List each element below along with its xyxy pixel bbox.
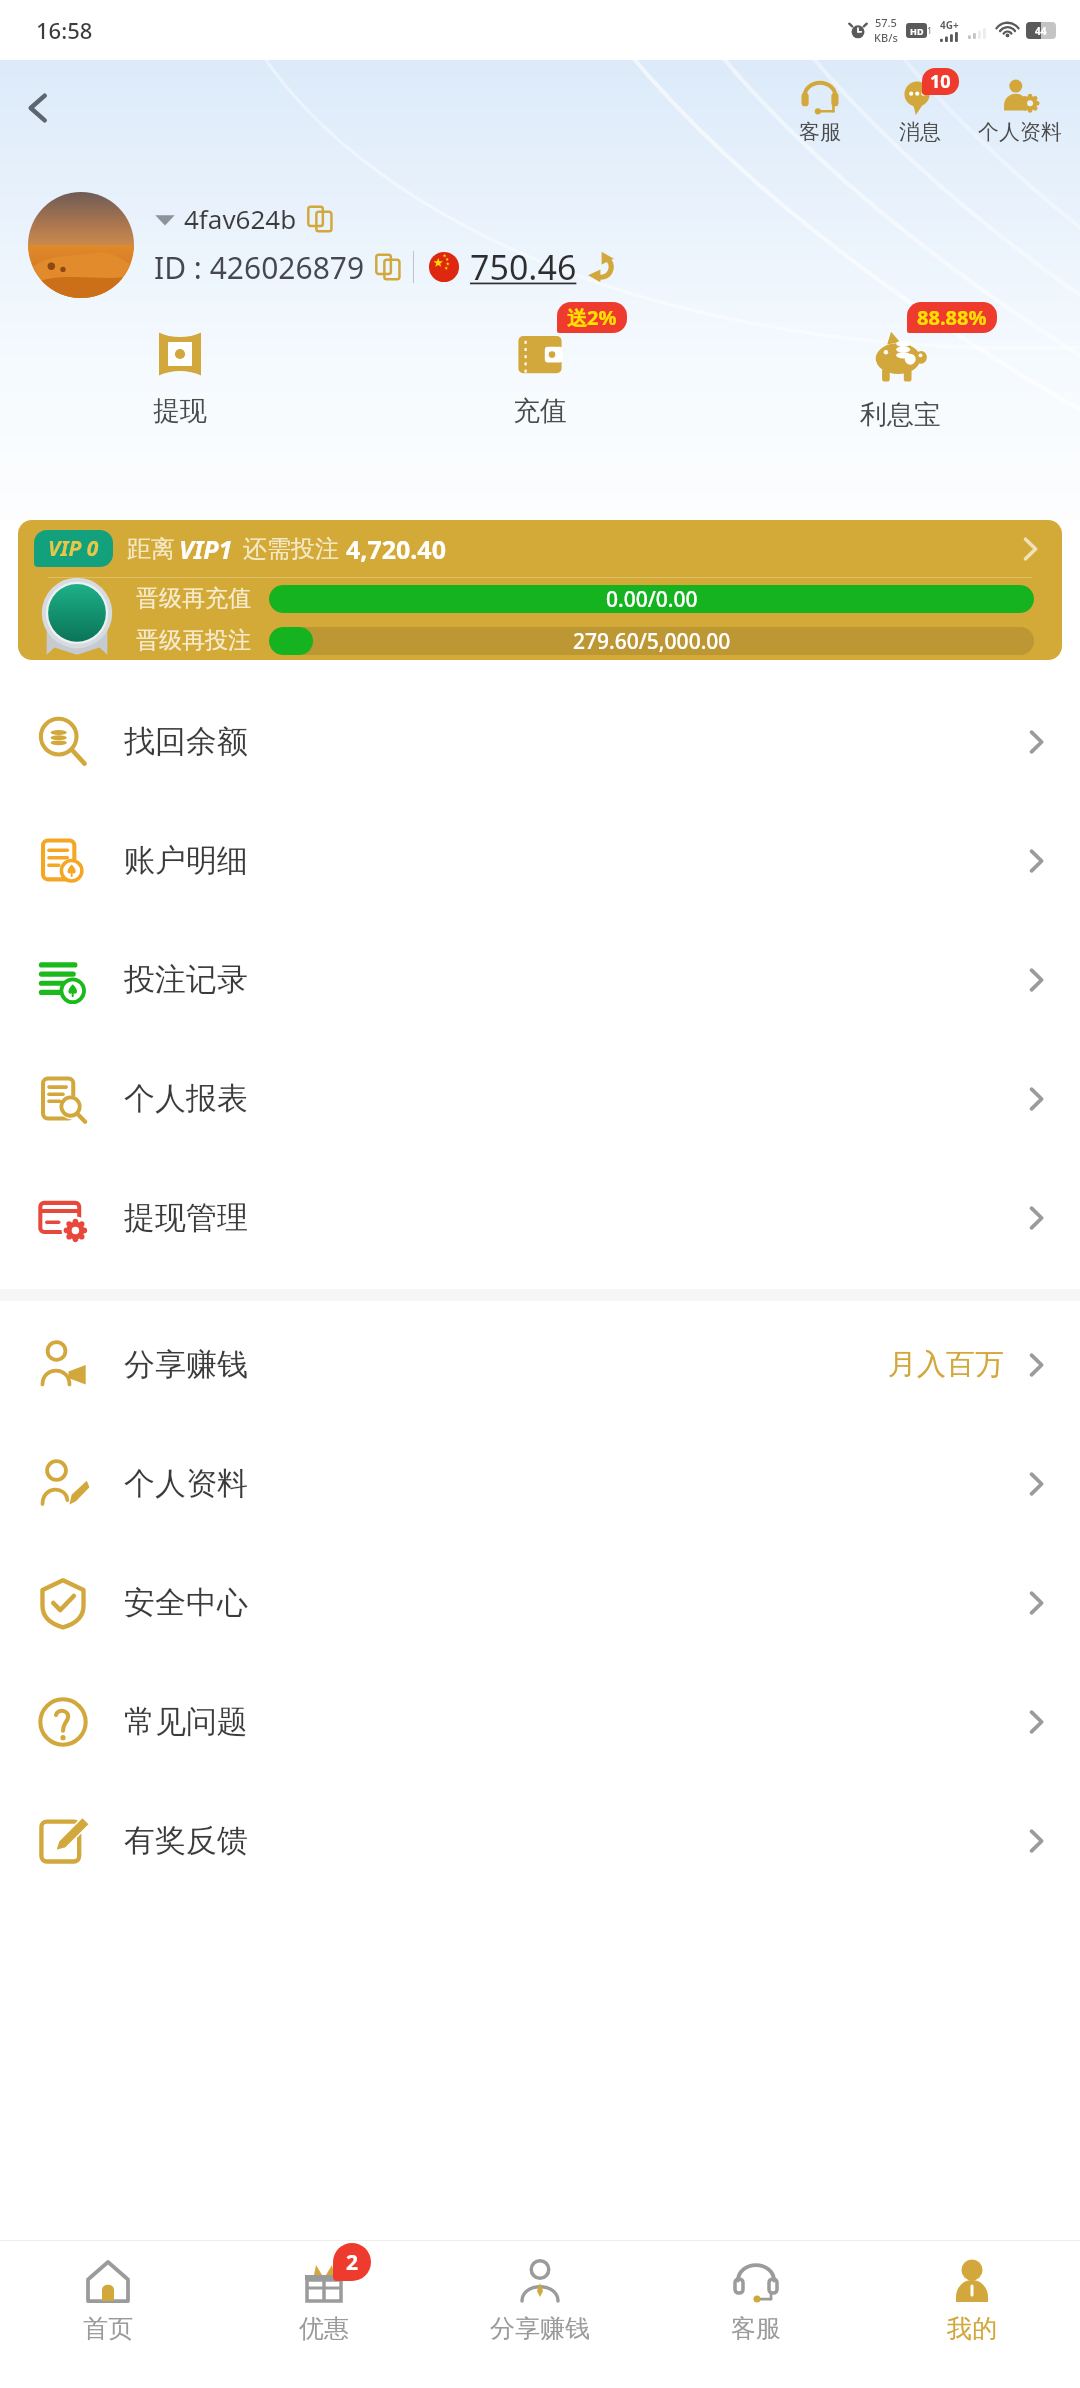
button[interactable]: 88.88% <box>720 322 1080 434</box>
staticText: 个人资料 <box>124 1464 248 1503</box>
button[interactable]: 个人报表 <box>0 1039 1080 1158</box>
staticText: 月入百万 <box>888 1346 1004 1383</box>
staticText: 4fav624b <box>184 201 297 236</box>
staticText: 44 <box>1035 24 1047 38</box>
button[interactable]: 750.46 <box>470 244 577 290</box>
button[interactable]: Messages <box>870 76 970 145</box>
staticText: 优惠 <box>299 2313 349 2344</box>
button[interactable]: Back <box>10 80 66 136</box>
staticText: ID : 426026879 <box>154 247 365 288</box>
staticText: 4,720.40 <box>346 532 446 566</box>
button[interactable]: 投注记录 <box>0 920 1080 1039</box>
button[interactable]: 我的 <box>864 2257 1080 2344</box>
staticText: 充值 <box>513 394 567 428</box>
staticText: 找回余额 <box>124 722 248 761</box>
staticText: 晋级再投注 <box>136 626 251 655</box>
staticText: HD <box>910 25 924 37</box>
button[interactable]: 有奖反馈 <box>0 1781 1080 1900</box>
staticText: 57.5 <box>875 15 897 30</box>
staticText: VIP 0 <box>48 534 99 563</box>
button[interactable]: 安全中心 <box>0 1543 1080 1662</box>
button[interactable]: 分享赚钱 <box>0 1305 1080 1424</box>
staticText: 1 <box>927 24 933 36</box>
staticText: 账户明细 <box>124 841 248 880</box>
staticText: 10 <box>930 69 951 94</box>
button[interactable]: 个人资料 <box>0 1424 1080 1543</box>
button[interactable]: 账户明细 <box>0 801 1080 920</box>
staticText: 消息 <box>899 119 941 145</box>
staticText: 279.60/5,000.00 <box>573 627 731 655</box>
button[interactable]: 2 <box>216 2257 432 2344</box>
button[interactable]: VIP 0 <box>18 520 1062 660</box>
button[interactable]: 常见问题 <box>0 1662 1080 1781</box>
button[interactable]: Profile <box>970 76 1070 145</box>
staticText: 4G+ <box>940 18 959 32</box>
staticText: 分享赚钱 <box>124 1345 248 1384</box>
button[interactable]: 4fav624b <box>154 201 333 236</box>
button[interactable]: 提现管理 <box>0 1158 1080 1277</box>
button[interactable]: 客服 <box>648 2257 864 2344</box>
staticText: 首页 <box>83 2313 133 2344</box>
staticText: 晋级再充值 <box>136 584 251 613</box>
staticText: 个人报表 <box>124 1079 248 1118</box>
staticText: 还需投注 <box>243 534 339 564</box>
staticText: 我的 <box>947 2313 997 2344</box>
staticText: 提现管理 <box>124 1198 248 1237</box>
staticText: 常见问题 <box>124 1702 248 1741</box>
staticText: 88.88% <box>917 304 987 331</box>
button[interactable]: 首页 <box>0 2257 216 2344</box>
staticText: VIP1 <box>179 532 233 566</box>
staticText: 0.00/0.00 <box>606 585 698 613</box>
staticText: KB/s <box>874 30 898 45</box>
staticText: 投注记录 <box>124 960 248 999</box>
staticText: 有奖反馈 <box>124 1821 248 1860</box>
staticText: 送2% <box>567 304 617 331</box>
button[interactable]: 送2% <box>360 322 720 430</box>
staticText: 分享赚钱 <box>490 2313 590 2344</box>
staticText: 距离 <box>127 534 175 564</box>
button[interactable]: 提现 <box>0 322 360 430</box>
button[interactable]: Copy ID <box>375 254 401 280</box>
button[interactable]: 找回余额 <box>0 682 1080 801</box>
button[interactable]: Refresh <box>585 251 617 283</box>
button[interactable]: Customer service <box>770 76 870 145</box>
staticText: 客服 <box>731 2313 781 2344</box>
button[interactable]: 分享赚钱 <box>432 2257 648 2344</box>
staticText: 提现 <box>153 394 207 428</box>
staticText: 利息宝 <box>860 398 941 432</box>
button[interactable]: Avatar <box>28 192 134 298</box>
staticText: 16:58 <box>36 15 93 45</box>
staticText: 2 <box>346 2248 359 2277</box>
staticText: 客服 <box>799 119 841 145</box>
staticText: 个人资料 <box>978 119 1062 145</box>
staticText: 安全中心 <box>124 1583 248 1622</box>
